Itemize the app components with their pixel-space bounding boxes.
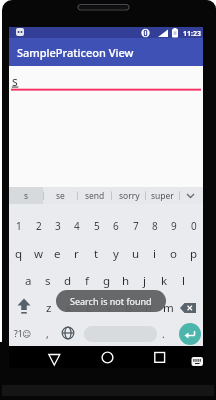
button[interactable]: l	[174, 268, 193, 294]
button[interactable]: m	[159, 295, 178, 321]
staticText: l	[182, 273, 185, 289]
staticText: g	[103, 273, 111, 289]
button[interactable]: s	[11, 183, 41, 209]
button[interactable]: ?1☺	[10, 321, 36, 347]
staticText: a	[25, 273, 32, 289]
button[interactable]: SamplePraticeon View	[9, 38, 203, 66]
button[interactable]: 4	[67, 213, 86, 239]
button[interactable]: .	[154, 321, 173, 347]
button[interactable]: y	[106, 241, 125, 267]
staticText: 6	[113, 219, 119, 233]
staticText: s	[45, 273, 51, 289]
button[interactable]: t	[87, 241, 106, 267]
button[interactable]: super	[146, 183, 178, 209]
button[interactable]: 5	[87, 213, 106, 239]
staticText: b	[125, 300, 133, 316]
button[interactable]	[179, 323, 201, 345]
staticText: v	[106, 300, 112, 316]
staticText: super	[151, 190, 174, 202]
staticText: .	[162, 327, 165, 341]
staticText: 4	[74, 219, 80, 233]
staticText: 1	[16, 219, 22, 233]
button[interactable]: z	[39, 295, 58, 321]
staticText: y	[113, 246, 119, 262]
button[interactable]: p	[184, 241, 203, 267]
staticText: se	[56, 190, 65, 202]
staticText: send	[85, 190, 105, 202]
button[interactable]: x	[59, 295, 78, 321]
button[interactable]: c	[79, 295, 98, 321]
button[interactable]: j	[135, 268, 154, 294]
staticText: SamplePraticeon View	[17, 45, 134, 60]
button[interactable]: 9	[164, 213, 183, 239]
button[interactable]: h	[116, 268, 135, 294]
button[interactable]: k	[155, 268, 174, 294]
button[interactable]: b	[119, 295, 138, 321]
button[interactable]: a	[19, 268, 38, 294]
button[interactable]	[98, 348, 116, 366]
staticText: sorry	[119, 190, 140, 202]
button[interactable]: 3	[48, 213, 67, 239]
staticText: d	[64, 273, 72, 289]
button[interactable]: v	[99, 295, 118, 321]
staticText: f	[85, 273, 89, 289]
button[interactable]	[191, 356, 204, 367]
button[interactable]: i	[145, 241, 164, 267]
button[interactable]	[178, 295, 200, 321]
staticText: m	[163, 300, 174, 316]
staticText: q	[15, 246, 23, 262]
staticText: s	[12, 73, 18, 89]
button[interactable]: n	[139, 295, 158, 321]
staticText: u	[132, 246, 140, 262]
button[interactable]	[150, 348, 168, 366]
button[interactable]: g	[97, 268, 116, 294]
button[interactable]: 1	[9, 213, 28, 239]
button[interactable]: s	[38, 268, 57, 294]
button[interactable]: ,	[38, 321, 57, 347]
button[interactable]: d	[58, 268, 77, 294]
staticText: p	[190, 246, 198, 262]
staticText: 11:23	[183, 29, 201, 39]
staticText: 2	[36, 219, 42, 233]
staticText: h	[122, 273, 130, 289]
staticText: ,	[46, 327, 49, 341]
staticText: x	[65, 300, 72, 316]
button[interactable]: 7	[126, 213, 145, 239]
staticText: c	[86, 300, 92, 316]
staticText: 9	[171, 219, 177, 233]
button[interactable]	[58, 323, 78, 343]
button[interactable]: 2	[29, 213, 48, 239]
staticText: n	[145, 300, 153, 316]
staticText: k	[161, 273, 168, 289]
button[interactable]	[9, 187, 43, 204]
button[interactable]	[84, 326, 157, 342]
button[interactable]	[45, 350, 63, 368]
staticText: 7	[133, 219, 139, 233]
button[interactable]: send	[79, 183, 111, 209]
button[interactable]: se	[45, 183, 75, 209]
staticText: w	[34, 246, 44, 262]
staticText: 8	[152, 219, 158, 233]
button[interactable]: sorry	[113, 183, 145, 209]
button[interactable]: 6	[106, 213, 125, 239]
button[interactable]: s	[9, 66, 203, 187]
button[interactable]: o	[164, 241, 183, 267]
staticText: Search is not found	[70, 295, 152, 307]
staticText: 0	[191, 219, 197, 233]
button[interactable]: 0	[184, 213, 203, 239]
button[interactable]: e	[48, 241, 67, 267]
staticText: ?1☺	[14, 328, 32, 340]
staticText: r	[74, 246, 79, 262]
staticText: j	[143, 273, 146, 289]
button[interactable]: f	[77, 268, 96, 294]
staticText: e	[54, 246, 61, 262]
button[interactable]: u	[126, 241, 145, 267]
button[interactable]: 8	[145, 213, 164, 239]
staticText: o	[170, 246, 177, 262]
staticText: t	[94, 246, 99, 262]
button[interactable]	[14, 295, 34, 321]
staticText: 5	[94, 219, 100, 233]
button[interactable]: q	[9, 241, 28, 267]
button[interactable]: r	[67, 241, 86, 267]
button[interactable]: w	[29, 241, 48, 267]
